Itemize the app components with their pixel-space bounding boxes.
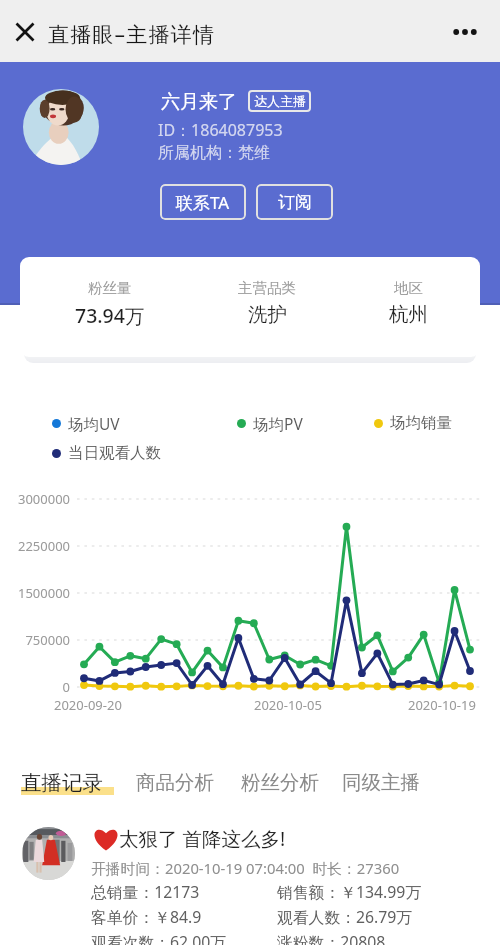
staticText: 73.94万 bbox=[75, 302, 145, 329]
staticText: 2020-09-20 bbox=[54, 696, 122, 714]
staticText: 场均PV bbox=[253, 413, 303, 434]
staticText: 2020-10-19 bbox=[408, 696, 476, 714]
staticText: 粉丝分析 bbox=[241, 770, 319, 795]
button[interactable]: More options bbox=[448, 15, 482, 49]
button[interactable]: 订阅 bbox=[256, 184, 333, 220]
staticText: 3000000 bbox=[0, 490, 70, 508]
staticText: 2020-10-05 bbox=[254, 696, 322, 714]
staticText: 达人主播 bbox=[254, 93, 306, 109]
staticText: 杭州 bbox=[389, 302, 428, 327]
button[interactable]: 粉丝分析 bbox=[241, 768, 319, 800]
staticText: 2250000 bbox=[0, 537, 70, 555]
staticText: 主营品类 bbox=[238, 279, 296, 297]
staticText: 商品分析 bbox=[136, 770, 214, 795]
staticText: 0 bbox=[0, 678, 70, 696]
button[interactable]: 直播记录 bbox=[21, 768, 114, 800]
staticText: ID：1864087953 bbox=[158, 119, 283, 141]
staticText: 1500000 bbox=[0, 584, 70, 602]
staticText: 洗护 bbox=[248, 302, 287, 327]
button[interactable]: 同级主播 bbox=[342, 768, 420, 800]
staticText: 场均UV bbox=[68, 413, 120, 434]
staticText: 直播记录 bbox=[21, 770, 103, 796]
staticText: 客单价：￥84.9 bbox=[91, 906, 202, 928]
staticText: 当日观看人数 bbox=[68, 443, 161, 463]
staticText: 粉丝量 bbox=[88, 279, 132, 297]
button[interactable]: Close bbox=[8, 15, 42, 49]
button[interactable]: 商品分析 bbox=[136, 768, 214, 800]
staticText: 六月来了 bbox=[161, 90, 237, 114]
staticText: 联系TA bbox=[176, 191, 230, 214]
staticText: 销售额：￥134.99万 bbox=[277, 881, 422, 903]
staticText: 场均销量 bbox=[390, 413, 452, 433]
staticText: 750000 bbox=[0, 631, 70, 649]
staticText: 太狠了 首降这么多! bbox=[119, 825, 286, 852]
staticText: 地区 bbox=[394, 279, 423, 297]
button[interactable]: 联系TA bbox=[160, 184, 246, 220]
staticText: 观看人数：26.79万 bbox=[277, 906, 413, 928]
staticText: 涨粉数：20808 bbox=[277, 931, 386, 945]
staticText: 所属机构：梵维 bbox=[158, 143, 270, 163]
staticText: 订阅 bbox=[278, 192, 312, 213]
staticText: 同级主播 bbox=[342, 770, 420, 795]
staticText: 总销量：12173 bbox=[91, 881, 200, 903]
staticText: 直播眼–主播详情 bbox=[48, 20, 216, 49]
staticText: 开播时间：2020-10-19 07:04:00 时长：27360 bbox=[91, 858, 400, 878]
staticText: 观看次数：62.00万 bbox=[91, 931, 227, 945]
